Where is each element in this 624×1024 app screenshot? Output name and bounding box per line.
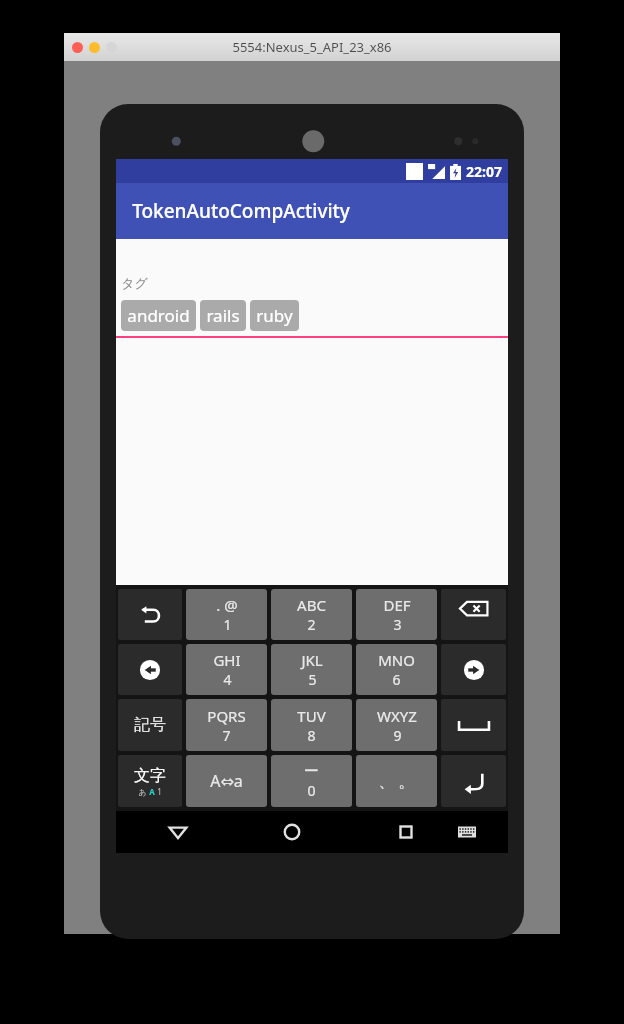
button[interactable]: Switch keyboard	[450, 815, 484, 849]
button[interactable]: Enter	[441, 755, 506, 807]
staticText: 9	[393, 726, 402, 745]
staticText: タグ	[121, 275, 148, 291]
staticText: あ	[138, 787, 147, 797]
staticText: ー	[304, 762, 319, 781]
button[interactable]: Back	[161, 815, 195, 849]
button[interactable]: DEF	[356, 589, 437, 640]
staticText: PQRS	[207, 706, 246, 726]
staticText: 、 。	[378, 770, 415, 792]
staticText: rails	[206, 304, 240, 327]
button[interactable]: Space	[441, 699, 506, 751]
button[interactable]: 記号	[118, 699, 182, 751]
staticText: 1	[157, 786, 162, 797]
button[interactable]: 文字	[118, 755, 182, 807]
staticText: 3	[393, 615, 402, 634]
button[interactable]: ー	[271, 755, 352, 807]
staticText: TokenAutoCompActivity	[132, 198, 350, 224]
staticText: ABC	[297, 595, 326, 615]
staticText: 記号	[134, 715, 166, 735]
staticText: 4	[223, 670, 232, 689]
staticText: WXYZ	[377, 706, 417, 726]
button[interactable]: rails	[200, 300, 246, 331]
button[interactable]: ABC	[271, 589, 352, 640]
staticText: 7	[222, 726, 231, 745]
staticText: A	[149, 786, 155, 797]
button[interactable]: Left	[118, 644, 182, 695]
button[interactable]: Delete	[441, 589, 506, 640]
staticText: ruby	[256, 304, 293, 327]
staticText: android	[127, 304, 190, 327]
button[interactable]: PQRS	[186, 699, 267, 751]
staticText: DEF	[383, 595, 411, 615]
button[interactable]: WXYZ	[356, 699, 437, 751]
staticText: A⇔a	[210, 770, 243, 792]
staticText: JKL	[301, 650, 323, 670]
button[interactable]: JKL	[271, 644, 352, 695]
staticText: 文字	[134, 766, 166, 786]
staticText: . @	[216, 595, 238, 615]
staticText: 2	[307, 615, 316, 634]
staticText: GHI	[213, 650, 241, 670]
button[interactable]: 、 。	[356, 755, 437, 807]
button[interactable]: MNO	[356, 644, 437, 695]
button[interactable]: android	[121, 300, 196, 331]
button[interactable]: ruby	[250, 300, 299, 331]
staticText: 5554:Nexus_5_API_23_x86	[232, 38, 392, 56]
button[interactable]: Right	[441, 644, 506, 695]
staticText: 22:07	[466, 162, 502, 181]
staticText: 8	[307, 726, 316, 745]
staticText: MNO	[378, 650, 415, 670]
button[interactable]: GHI	[186, 644, 267, 695]
button[interactable]: Home	[275, 815, 309, 849]
button[interactable]: Recents	[389, 815, 423, 849]
button[interactable]: Undo	[118, 589, 182, 640]
staticText: 5	[308, 670, 317, 689]
staticText: 0	[307, 781, 316, 800]
staticText: TUV	[297, 706, 326, 726]
staticText: 6	[392, 670, 401, 689]
staticText: 1	[223, 615, 232, 634]
button[interactable]: TUV	[271, 699, 352, 751]
button[interactable]: . @	[186, 589, 267, 640]
button[interactable]: A⇔a	[186, 755, 267, 807]
